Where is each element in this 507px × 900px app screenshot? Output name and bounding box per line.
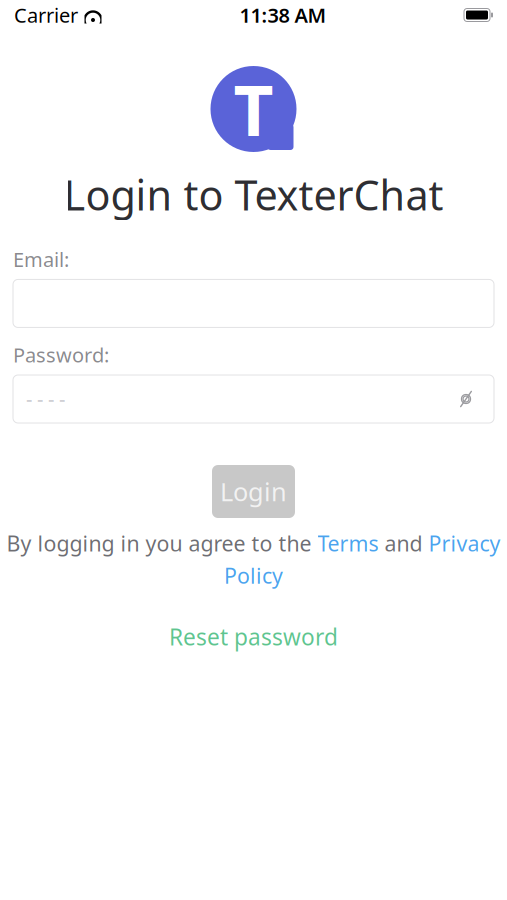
staticText: Login to TexterChat: [63, 167, 443, 222]
button[interactable]: Terms: [317, 529, 378, 557]
button[interactable]: Policy: [224, 561, 283, 590]
staticText: By logging in you agree to the: [6, 529, 317, 557]
staticText: Login: [220, 475, 287, 508]
staticText: Email:: [13, 246, 69, 272]
button[interactable]: Show password: [451, 384, 481, 414]
staticText: Password:: [13, 341, 109, 368]
staticText: 11:38 AM: [239, 2, 326, 28]
staticText: and: [378, 529, 428, 557]
staticText: Reset password: [169, 622, 338, 652]
staticText: T: [233, 63, 273, 155]
button[interactable]: Reset password: [169, 622, 338, 652]
staticText: Privacy: [428, 529, 500, 557]
staticText: Policy: [224, 561, 283, 590]
staticText: Carrier: [14, 2, 78, 28]
button[interactable]: Privacy: [428, 529, 500, 557]
staticText: - - - -: [26, 386, 65, 412]
button[interactable]: Login: [212, 465, 295, 518]
staticText: Terms: [317, 529, 378, 557]
